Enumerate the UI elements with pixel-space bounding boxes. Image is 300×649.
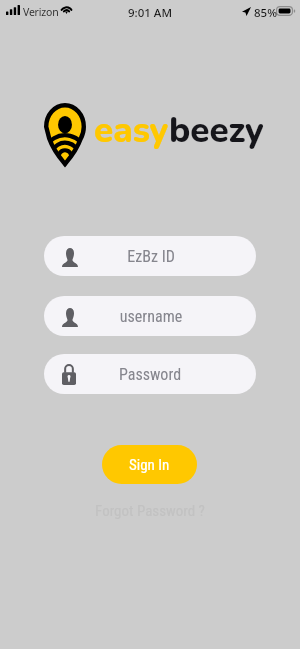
- staticText: username: [78, 307, 224, 326]
- button[interactable]: username: [44, 296, 256, 336]
- staticText: Password: [76, 365, 224, 384]
- staticText: 9:01 AM: [128, 5, 172, 21]
- staticText: 85%: [254, 5, 277, 21]
- button[interactable]: EzBz ID: [44, 236, 256, 276]
- staticText: easy: [94, 107, 169, 155]
- staticText: beezy: [169, 107, 264, 155]
- staticText: Sign In: [129, 456, 170, 474]
- button[interactable]: Password: [44, 354, 256, 394]
- button[interactable]: Sign In: [102, 445, 197, 484]
- staticText: Forgot Password ?: [95, 502, 205, 520]
- staticText: EzBz ID: [78, 247, 224, 266]
- staticText: Verizon: [23, 5, 59, 19]
